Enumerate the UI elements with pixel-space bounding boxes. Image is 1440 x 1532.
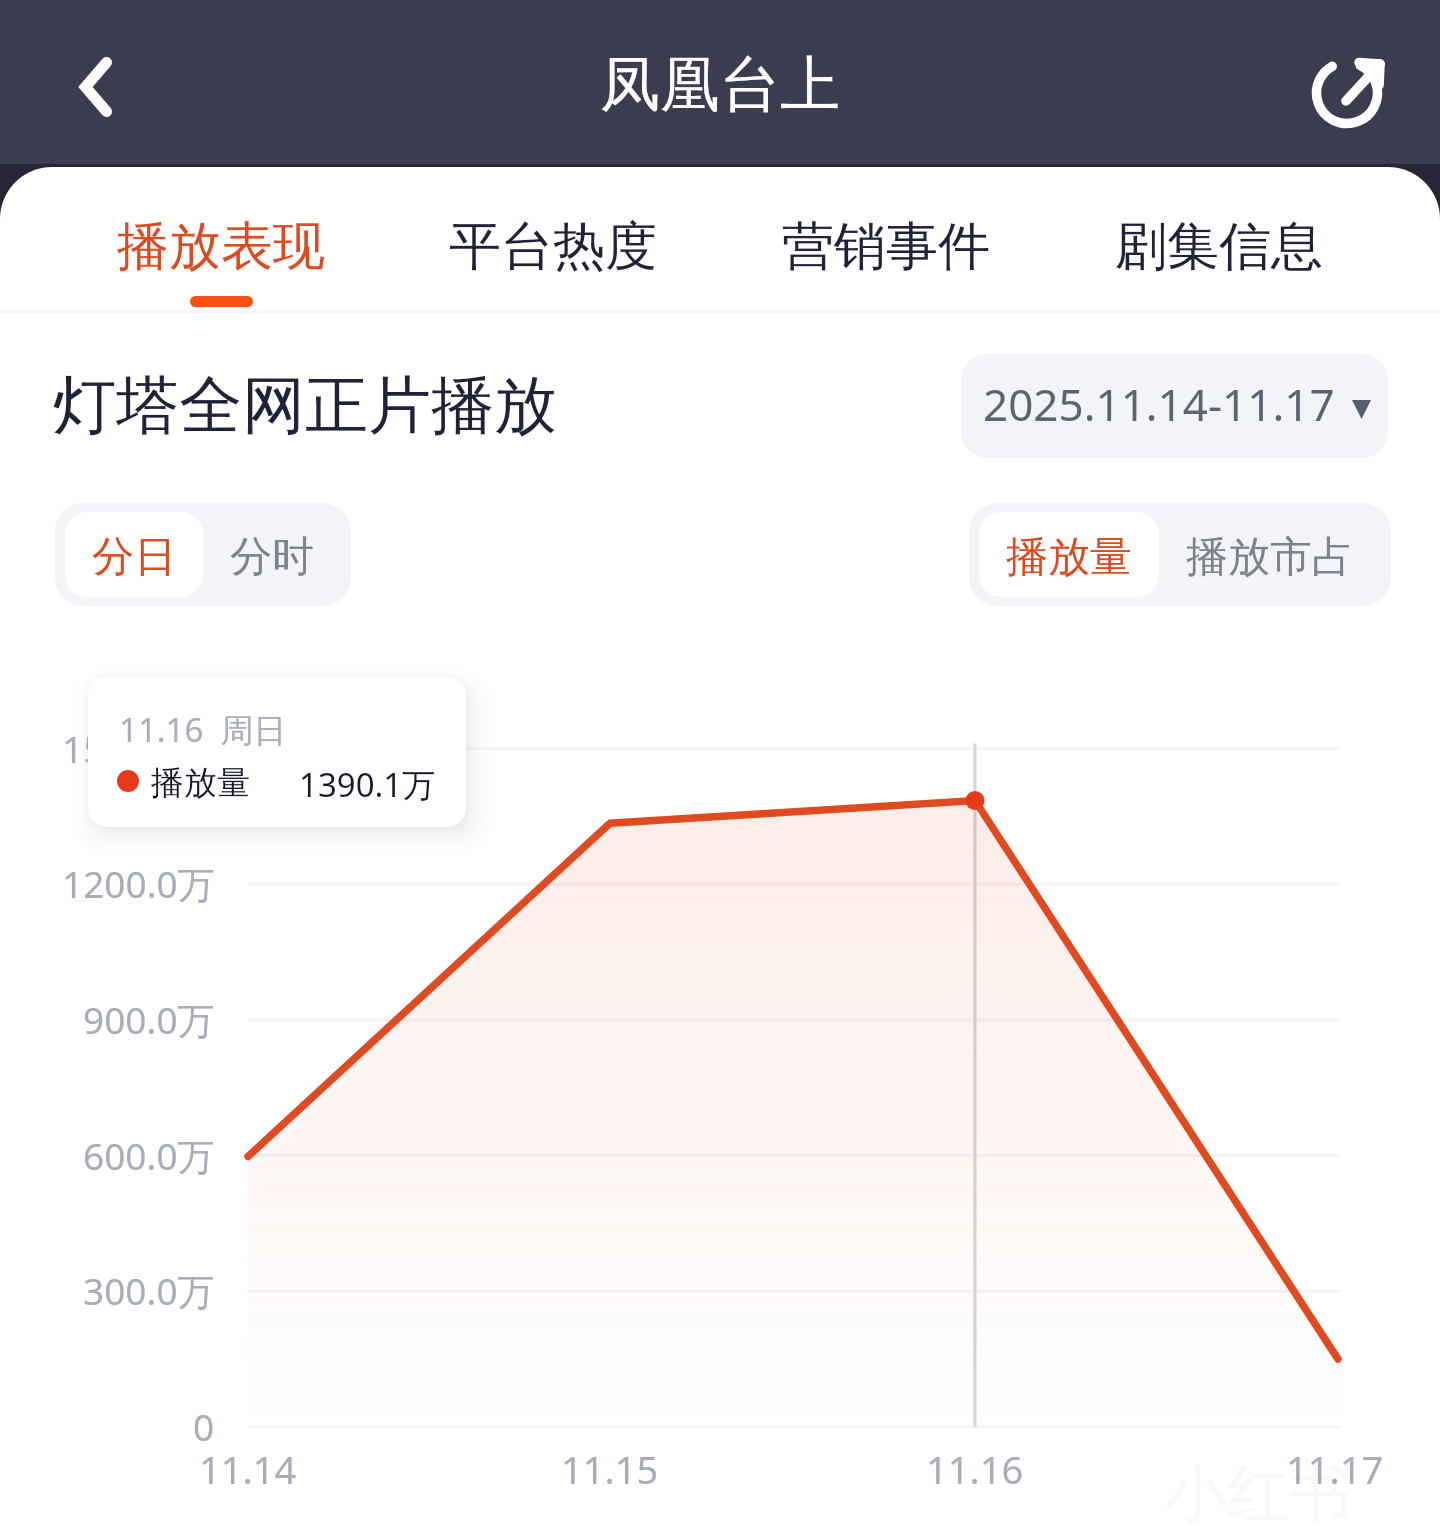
staticText: 300.0万	[83, 1265, 215, 1316]
button[interactable]: Back	[48, 39, 144, 135]
staticText: 播放量	[151, 762, 250, 804]
staticText: 凤凰台上	[600, 47, 840, 123]
staticText: 2025.11.14-11.17	[983, 374, 1335, 434]
button[interactable]: 播放表现	[55, 167, 387, 327]
staticText: 小红书	[1165, 1455, 1351, 1532]
staticText: 11.16 周日	[119, 707, 287, 752]
staticText: 11.15	[561, 1443, 659, 1495]
button[interactable]: Share	[1313, 57, 1393, 137]
staticText: 600.0万	[83, 1130, 215, 1181]
staticText: 11.16	[926, 1443, 1024, 1495]
staticText: 平台热度	[449, 214, 657, 280]
staticText: 分日	[92, 531, 176, 584]
staticText: 播放表现	[117, 214, 325, 280]
button[interactable]: 分日	[65, 512, 203, 597]
staticText: 营销事件	[782, 214, 990, 280]
staticText: 播放市占	[1186, 531, 1354, 584]
staticText: 灯塔全网正片播放	[53, 366, 557, 445]
staticText: 播放量	[1006, 531, 1132, 584]
staticText: 1200.0万	[62, 858, 215, 909]
staticText: 分时	[230, 531, 314, 584]
staticText: 1500.0万	[62, 723, 215, 774]
button[interactable]: 剧集信息	[1052, 167, 1385, 327]
button[interactable]: 平台热度	[387, 167, 719, 327]
button[interactable]: 播放量	[979, 512, 1159, 597]
button[interactable]: 播放市占	[1159, 512, 1381, 597]
staticText: 11.17	[1286, 1443, 1384, 1495]
staticText: 900.0万	[83, 994, 215, 1045]
staticText: 11.14	[199, 1443, 297, 1495]
staticText: 剧集信息	[1115, 214, 1323, 280]
staticText: 1390.1万	[299, 762, 436, 807]
staticText: 0	[193, 1401, 215, 1451]
button[interactable]: 2025.11.14-11.17	[961, 354, 1388, 458]
button[interactable]: 分时	[203, 512, 341, 597]
button[interactable]: 营销事件	[719, 167, 1052, 327]
